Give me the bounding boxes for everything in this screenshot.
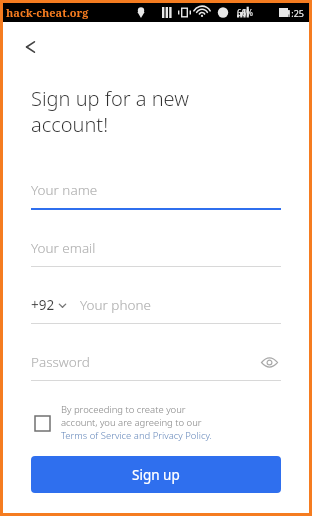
- button[interactable]: +92: [31, 286, 281, 324]
- button[interactable]: Password: [31, 343, 281, 381]
- button[interactable]: By proceeding to create your account, yo…: [31, 403, 281, 442]
- button[interactable]: Your name: [31, 171, 281, 210]
- staticText: Your email: [31, 239, 96, 257]
- button[interactable]: Sign up: [31, 456, 281, 493]
- staticText: hack-cheat.org: [6, 5, 89, 20]
- staticText: Sign up for a new account!: [31, 85, 189, 138]
- staticText: Your name: [31, 181, 98, 199]
- staticText: 01:25: [281, 7, 305, 19]
- staticText: Your phone: [80, 296, 151, 314]
- staticText: 66%: [237, 7, 253, 18]
- button[interactable]: +92: [31, 296, 80, 314]
- button[interactable]: Show password: [257, 350, 281, 374]
- staticText: +92: [31, 296, 55, 314]
- button[interactable]: Your email: [31, 229, 281, 267]
- button[interactable]: Back: [13, 31, 45, 63]
- staticText: Password: [31, 353, 90, 371]
- staticText: By proceeding to create your account, yo…: [61, 403, 212, 442]
- staticText: Sign up: [132, 466, 180, 484]
